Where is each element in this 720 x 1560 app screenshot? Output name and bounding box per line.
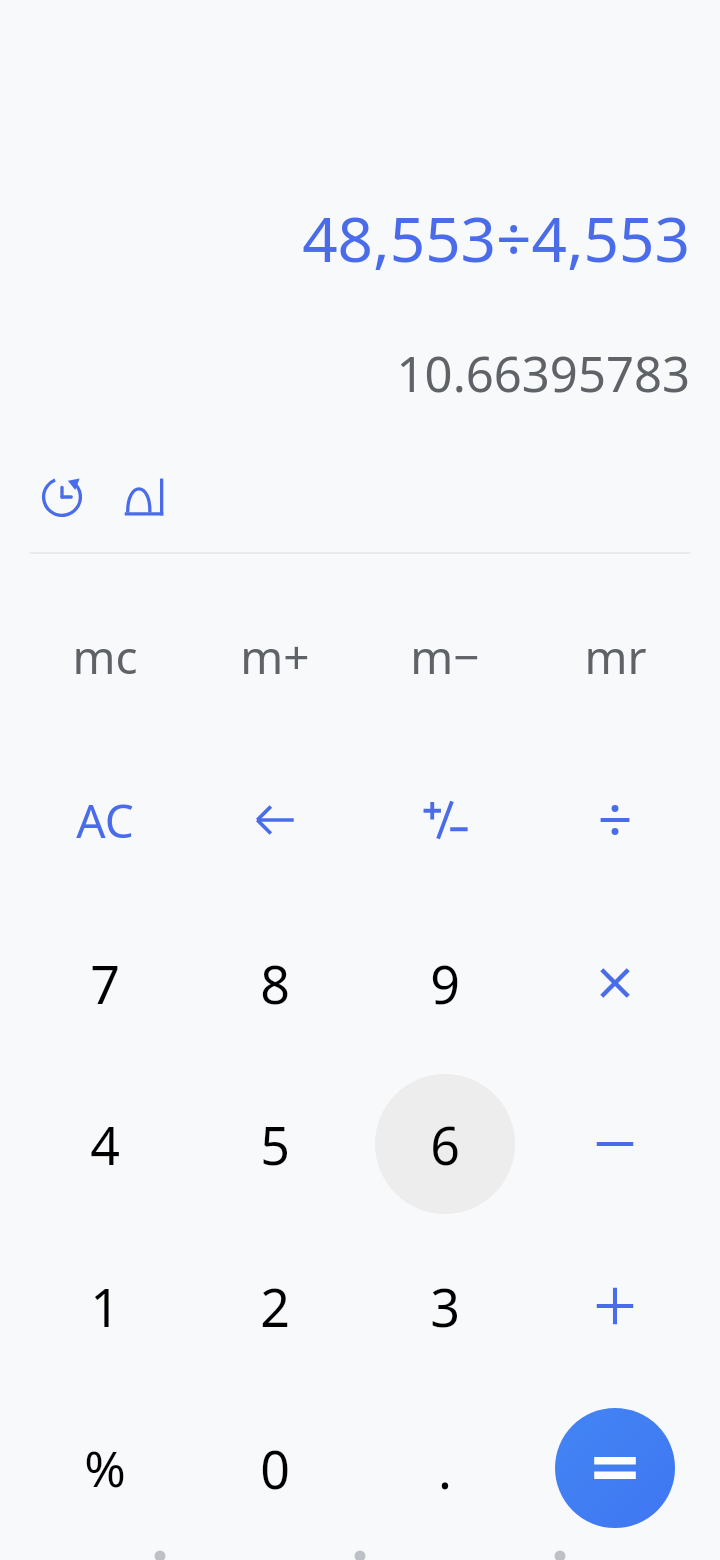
button[interactable]: 7 [35,913,175,1053]
staticText: m− [410,625,480,688]
staticText: 10.66395783 [396,340,690,407]
staticText: mc [72,625,138,688]
button[interactable]: m+ [205,586,345,726]
staticText: 8 [260,948,290,1019]
staticText: 5 [260,1109,290,1180]
button[interactable]: Equals [555,1408,675,1528]
staticText: 0 [260,1433,290,1504]
button[interactable]: History [28,463,96,531]
button[interactable]: 0 [205,1398,345,1538]
button[interactable]: 2 [205,1236,345,1376]
button[interactable]: 1 [35,1236,175,1376]
button[interactable]: AC [35,750,175,890]
button[interactable]: 3 [375,1236,515,1376]
staticText: 6 [430,1109,460,1180]
staticText: m+ [240,625,310,688]
button[interactable]: m− [375,586,515,726]
staticText: 2 [260,1271,290,1342]
staticText: 1 [90,1271,120,1342]
button[interactable]: 4 [35,1074,175,1214]
staticText: 9 [430,948,460,1019]
button[interactable]: Multiply [545,913,685,1053]
button[interactable]: 6 [375,1074,515,1214]
button[interactable]: Minus [545,1074,685,1214]
button[interactable]: Backspace [205,750,345,890]
button[interactable]: 8 [205,913,345,1053]
button[interactable]: Graph [110,463,178,531]
staticText: % [84,1434,126,1502]
button[interactable]: Plus minus [375,750,515,890]
button[interactable]: % [35,1398,175,1538]
staticText: AC [76,789,134,852]
button[interactable]: mc [35,586,175,726]
button[interactable]: Divide [545,750,685,890]
button[interactable]: . [375,1398,515,1538]
staticText: . [438,1433,452,1504]
staticText: 3 [430,1271,460,1342]
staticText: 4 [90,1109,120,1180]
button[interactable]: mr [545,586,685,726]
staticText: 7 [90,948,120,1019]
button[interactable]: Plus [545,1236,685,1376]
staticText: 48,553÷4,553 [302,196,690,280]
button[interactable]: 5 [205,1074,345,1214]
button[interactable]: 9 [375,913,515,1053]
staticText: mr [584,625,647,688]
